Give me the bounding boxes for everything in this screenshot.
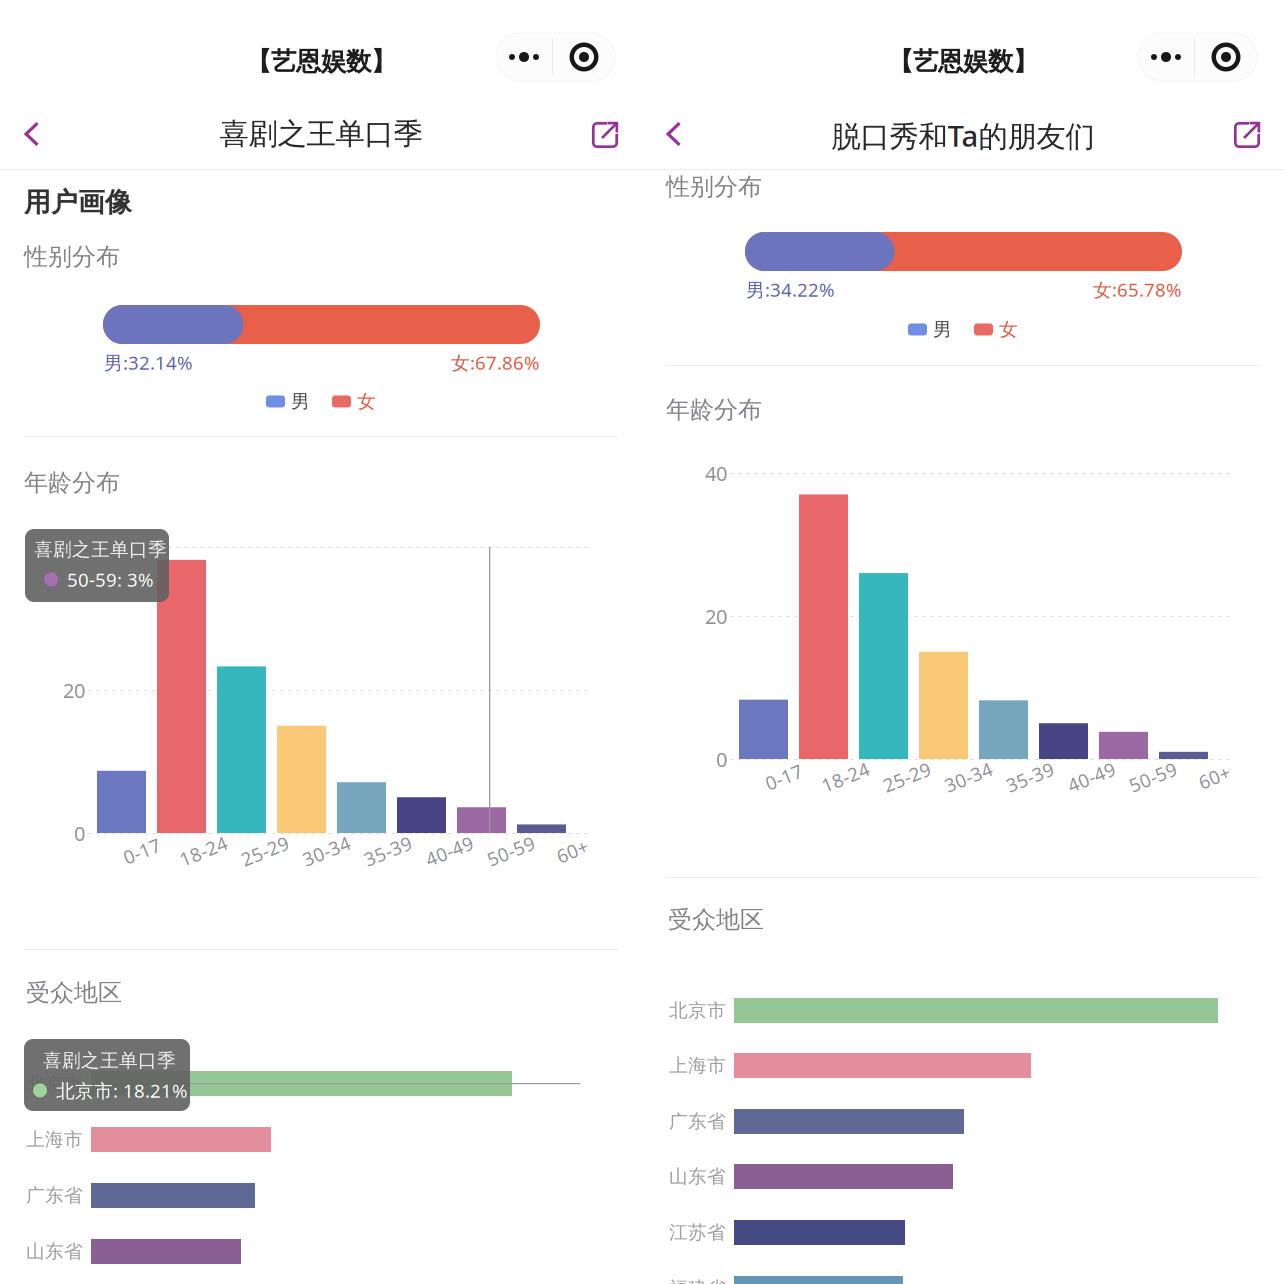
- staticText: 50-59: [1128, 765, 1178, 789]
- staticText: 喜剧之王单口季: [219, 116, 422, 152]
- staticText: 【艺恩娱数】: [888, 46, 1038, 77]
- staticText: 脱口秀和Ta的朋友们: [831, 116, 1094, 155]
- staticText: 40-49: [424, 839, 474, 863]
- staticText: 0: [716, 746, 727, 773]
- staticText: 50-59: [486, 839, 536, 863]
- staticText: 福建省: [669, 1277, 726, 1284]
- staticText: 女:67.86%: [451, 350, 540, 375]
- staticText: 上海市: [26, 1128, 83, 1151]
- staticText: 0-17: [122, 839, 161, 863]
- staticText: 30-34: [301, 839, 351, 863]
- staticText: 男: [291, 390, 310, 413]
- button[interactable]: Share: [580, 110, 630, 160]
- staticText: 广东省: [669, 1110, 726, 1133]
- staticText: 0: [74, 820, 85, 847]
- staticText: 上海市: [669, 1054, 726, 1077]
- staticText: 40: [705, 460, 727, 487]
- staticText: 性别分布: [666, 172, 762, 201]
- button[interactable]: Back: [651, 111, 697, 157]
- staticText: 20: [63, 677, 85, 704]
- staticText: 受众地区: [668, 905, 764, 934]
- staticText: 受众地区: [26, 978, 122, 1007]
- staticText: 20: [705, 603, 727, 630]
- staticText: 广东省: [26, 1184, 83, 1207]
- staticText: 山东省: [669, 1165, 726, 1188]
- button[interactable]: Close mini program: [1195, 33, 1257, 81]
- staticText: 18-24: [820, 765, 870, 789]
- button[interactable]: Back: [9, 111, 55, 157]
- staticText: 60+: [556, 839, 589, 863]
- staticText: 喜剧之王单口季: [34, 538, 167, 561]
- staticText: 男:34.22%: [746, 277, 835, 302]
- staticText: 18-24: [178, 839, 228, 863]
- staticText: 年龄分布: [24, 468, 120, 497]
- button[interactable]: More options: [1138, 33, 1194, 81]
- staticText: 北京市: [26, 1072, 83, 1095]
- staticText: 江苏省: [669, 1221, 726, 1244]
- staticText: 女: [357, 390, 376, 413]
- staticText: 【艺恩娱数】: [246, 46, 396, 77]
- staticText: 山东省: [26, 1240, 83, 1263]
- staticText: 35-39: [1005, 765, 1055, 789]
- staticText: 北京市: 18.21%: [56, 1078, 188, 1103]
- staticText: 男:32.14%: [104, 350, 193, 375]
- staticText: 北京市: [669, 999, 726, 1022]
- staticText: 25-29: [240, 839, 290, 863]
- button[interactable]: More options: [496, 33, 552, 81]
- staticText: 25-29: [882, 765, 932, 789]
- staticText: 30-34: [943, 765, 993, 789]
- staticText: 60+: [1198, 765, 1231, 789]
- staticText: 年龄分布: [666, 395, 762, 424]
- button[interactable]: Share: [1222, 110, 1272, 160]
- staticText: 女:65.78%: [1093, 277, 1182, 302]
- staticText: 喜剧之王单口季: [43, 1049, 176, 1072]
- staticText: 男: [933, 318, 952, 341]
- staticText: 女: [999, 318, 1018, 341]
- staticText: 用户画像: [24, 186, 132, 219]
- staticText: 50-59: 3%: [67, 567, 154, 592]
- staticText: 性别分布: [24, 242, 120, 271]
- staticText: 35-39: [363, 839, 413, 863]
- staticText: 0-17: [764, 765, 803, 789]
- staticText: 40-49: [1066, 765, 1116, 789]
- button[interactable]: Close mini program: [553, 33, 615, 81]
